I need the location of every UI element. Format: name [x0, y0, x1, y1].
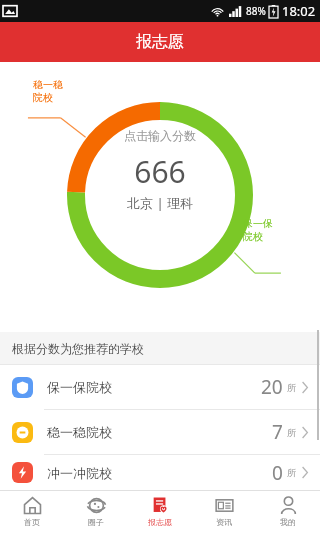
staticText: 0 [272, 460, 283, 486]
button[interactable]: 我的 [256, 490, 320, 533]
button[interactable]: 冲一冲院校 [0, 455, 320, 490]
staticText: 首页 [24, 517, 40, 527]
staticText: 所 [287, 382, 296, 393]
staticText: 所 [287, 467, 296, 478]
staticText: 北京 | 理科 [127, 194, 193, 212]
staticText: 所 [287, 427, 296, 438]
button[interactable]: 保一保院校 [0, 365, 320, 409]
staticText: 报志愿 [148, 517, 172, 527]
staticText: 666 [134, 151, 186, 192]
staticText: 我的 [280, 517, 296, 527]
button[interactable]: 资讯 [192, 490, 256, 533]
staticText: 7 [272, 419, 283, 445]
staticText: 圈子 [88, 517, 104, 527]
staticText: 18:02 [282, 2, 316, 20]
staticText: 根据分数为您推荐的学校 [12, 341, 144, 356]
button[interactable]: 首页 [0, 490, 64, 533]
staticText: 冲一冲院校 [47, 465, 112, 481]
button[interactable]: 报志愿 [128, 490, 192, 533]
button[interactable]: 圈子 [64, 490, 128, 533]
staticText: 稳一稳院校 [47, 424, 112, 440]
staticText: 保一保院校 [47, 379, 112, 395]
staticText: 院校 [243, 230, 263, 243]
button[interactable]: 点击输入分数 [106, 122, 214, 218]
staticText: 20 [261, 374, 283, 400]
staticText: 报志愿 [136, 32, 184, 52]
staticText: 资讯 [216, 517, 232, 527]
staticText: 院校 [33, 91, 53, 104]
button[interactable]: 稳一稳院校 [0, 410, 320, 454]
staticText: 点击输入分数 [124, 128, 196, 143]
staticText: 稳一稳 [33, 78, 63, 91]
staticText: 88% [246, 4, 266, 18]
staticText: 保一保 [243, 217, 273, 230]
